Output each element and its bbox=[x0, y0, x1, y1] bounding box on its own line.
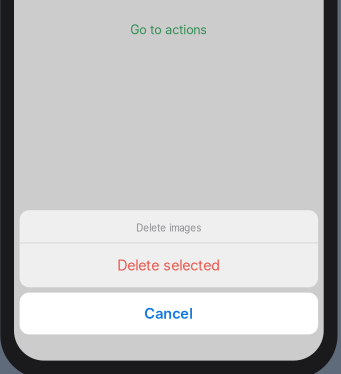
staticText: Go to actions bbox=[130, 22, 207, 37]
staticText: Delete images bbox=[136, 222, 201, 234]
button[interactable]: Go to actions bbox=[109, 19, 229, 41]
button[interactable]: Delete selected bbox=[20, 243, 318, 287]
staticText: Cancel bbox=[144, 305, 193, 322]
button[interactable]: Cancel bbox=[20, 293, 318, 334]
staticText: Delete selected bbox=[117, 257, 220, 274]
